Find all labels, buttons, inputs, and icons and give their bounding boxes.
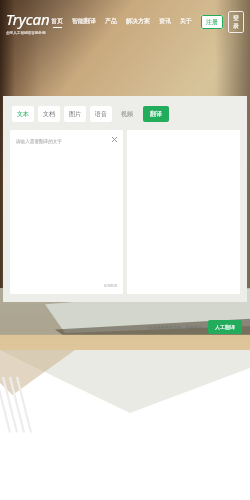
staticText: 请输入需要翻译的文字 [16, 139, 62, 145]
button[interactable]: Trycan [6, 7, 50, 38]
staticText: 首页 [51, 17, 63, 25]
button[interactable]: 请输入需要翻译的文字 [10, 130, 123, 294]
staticText: 注册 [206, 18, 218, 26]
staticText: 人工翻译 [215, 324, 235, 330]
button[interactable]: 智能翻译 [71, 13, 97, 32]
staticText: 语音 [95, 110, 107, 118]
button[interactable]: 解决方案 [125, 13, 151, 32]
button[interactable]: 首页 [50, 13, 64, 32]
staticText: 资讯 [159, 17, 171, 25]
button[interactable]: 视频 [116, 106, 138, 122]
staticText: 智能翻译 [72, 17, 96, 25]
button[interactable]: 清空 [109, 134, 119, 144]
staticText: 产品 [105, 17, 117, 25]
staticText: 全球人工智能语言服务商 [6, 31, 46, 36]
button[interactable]: 翻译 [143, 106, 169, 122]
button[interactable]: 登录 [228, 11, 244, 33]
button[interactable]: 图片 [64, 106, 86, 122]
staticText: 文档 [43, 110, 55, 118]
staticText: Trycan [6, 9, 50, 29]
button[interactable]: 人工翻译 [208, 320, 242, 334]
staticText: 登录 [233, 14, 239, 30]
staticText: 解决方案 [126, 17, 150, 25]
button[interactable]: 资讯 [158, 13, 172, 32]
button[interactable]: 文档 [38, 106, 60, 122]
staticText: 0/5000 [104, 283, 117, 288]
staticText: 翻译 [150, 110, 162, 118]
button[interactable]: 关于 [179, 13, 193, 32]
staticText: 视频 [121, 110, 133, 118]
staticText: 文本 [17, 110, 29, 118]
button[interactable]: 注册 [201, 15, 223, 29]
staticText: 图片 [69, 110, 81, 118]
button[interactable]: 产品 [104, 13, 118, 32]
staticText: 关于 [180, 17, 192, 25]
button[interactable]: 语音 [90, 106, 112, 122]
button[interactable]: 文本 [12, 106, 34, 122]
staticText: 登录使用更多功能，体验更佳 [148, 325, 203, 330]
